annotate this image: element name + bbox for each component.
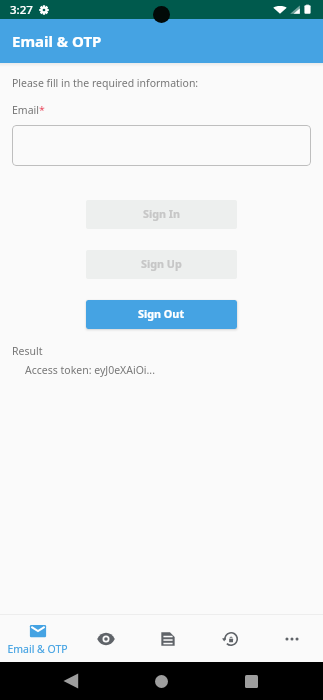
staticText: Sign Up bbox=[141, 256, 182, 271]
button[interactable]: Documents bbox=[137, 615, 199, 662]
staticText: Sign In bbox=[143, 206, 181, 221]
button[interactable]: Sign Out bbox=[86, 300, 237, 329]
staticText: Sign Out bbox=[138, 306, 185, 321]
button[interactable]: Home bbox=[155, 675, 168, 688]
button[interactable]: More bbox=[261, 615, 323, 662]
button[interactable]: Visibility bbox=[75, 615, 137, 662]
button[interactable]: Sign In bbox=[86, 200, 237, 229]
staticText: 3:27 bbox=[10, 2, 33, 18]
staticText: Email* bbox=[12, 103, 45, 117]
button[interactable]: Back bbox=[63, 673, 79, 689]
staticText: Access token: eyJ0eXAiOi... bbox=[25, 363, 155, 377]
staticText: Email & OTP bbox=[12, 31, 102, 51]
button[interactable] bbox=[12, 125, 311, 166]
button[interactable]: Email and OTP bbox=[0, 615, 75, 662]
button[interactable]: Sign Up bbox=[86, 250, 237, 279]
staticText: Result bbox=[12, 344, 43, 358]
button[interactable]: Recents bbox=[245, 675, 258, 688]
staticText: Email & OTP bbox=[7, 642, 68, 656]
button[interactable]: Reset password bbox=[199, 615, 261, 662]
staticText: Please fill in the required information: bbox=[12, 76, 199, 90]
